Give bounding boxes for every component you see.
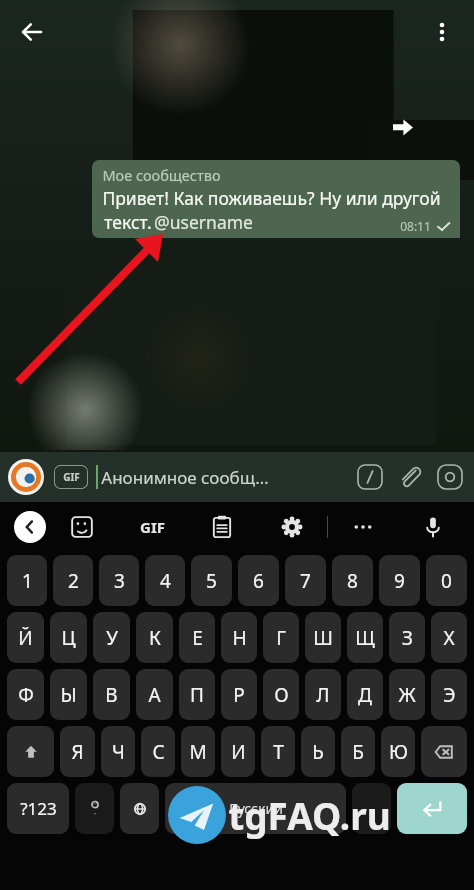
staticText: 6 [253, 568, 264, 594]
staticText: Ф [18, 682, 34, 708]
button[interactable]: 1 [7, 555, 47, 606]
staticText: К [149, 625, 161, 651]
staticText: 08:11 [400, 218, 431, 234]
button[interactable]: Back [8, 8, 56, 56]
button[interactable]: Ф [7, 669, 44, 720]
button[interactable]: 6 [238, 555, 279, 606]
staticText: О [274, 682, 289, 708]
button[interactable]: П [179, 669, 215, 720]
button[interactable]: Expand [14, 511, 46, 543]
button[interactable]: 2 [53, 555, 93, 606]
staticText: Г [276, 625, 286, 651]
staticText: Д [358, 682, 372, 708]
button[interactable]: Enter [397, 783, 467, 834]
button[interactable]: Commands [350, 457, 390, 497]
staticText: И [231, 739, 246, 765]
staticText: Ю [389, 739, 408, 765]
button[interactable]: Ж [389, 669, 425, 720]
button[interactable]: З [389, 612, 425, 663]
button[interactable]: Э [431, 669, 467, 720]
staticText: 4 [160, 568, 171, 594]
button[interactable]: GIF keyboard [117, 502, 187, 552]
staticText: Мое сообщество [102, 165, 221, 185]
button[interactable]: М [181, 726, 215, 777]
staticText: GIF [63, 470, 80, 484]
button[interactable]: More [328, 502, 398, 552]
button[interactable]: К [136, 612, 173, 663]
button[interactable]: 3 [99, 555, 139, 606]
button[interactable]: Ы [50, 669, 87, 720]
button[interactable]: Stickers [46, 502, 117, 552]
staticText: Х [443, 625, 455, 651]
button[interactable]: 9 [379, 555, 420, 606]
staticText: Ц [61, 625, 76, 651]
button[interactable]: Settings [257, 502, 327, 552]
button[interactable]: GIF [54, 465, 88, 489]
button[interactable]: ?123 [7, 783, 69, 834]
staticText: Л [316, 682, 330, 708]
button[interactable]: Ю [381, 726, 415, 777]
staticText: 8 [347, 568, 358, 594]
button[interactable]: 8 [332, 555, 373, 606]
button[interactable]: Voice input [398, 502, 468, 552]
button[interactable]: Ц [50, 612, 87, 663]
staticText: Й [18, 625, 33, 651]
button[interactable]: 5 [191, 555, 232, 606]
button[interactable]: Т [261, 726, 295, 777]
button[interactable]: Ш [305, 612, 341, 663]
staticText: П [190, 682, 204, 708]
staticText: У [106, 625, 118, 651]
button[interactable]: Ь [301, 726, 335, 777]
button[interactable]: С [141, 726, 175, 777]
button[interactable]: Русский [165, 783, 346, 834]
staticText: В [105, 682, 118, 708]
staticText: Русский [229, 799, 283, 818]
button[interactable]: А [136, 669, 173, 720]
button[interactable]: Р [221, 669, 257, 720]
button[interactable]: Й [7, 612, 44, 663]
button[interactable]: Change language [120, 783, 159, 834]
staticText: С [152, 739, 165, 765]
button[interactable]: Camera [430, 457, 470, 497]
button[interactable]: И [221, 726, 255, 777]
button[interactable]: Period [352, 783, 391, 834]
button[interactable]: Backspace [421, 726, 467, 777]
button[interactable]: Г [263, 612, 299, 663]
staticText: Ь [312, 739, 324, 765]
staticText: Ш [313, 625, 333, 651]
button[interactable]: Я [60, 726, 95, 777]
button[interactable]: Мое сообщество [92, 160, 460, 238]
staticText: Ж [398, 682, 416, 708]
button[interactable]: Shift [7, 726, 54, 777]
button[interactable]: Л [305, 669, 341, 720]
button[interactable]: В [93, 669, 130, 720]
button[interactable]: Д [347, 669, 383, 720]
button[interactable]: О [263, 669, 299, 720]
staticText: Щ [355, 625, 375, 651]
button[interactable]: Forward [388, 112, 418, 142]
staticText: Т [273, 739, 284, 765]
button[interactable]: Щ [347, 612, 383, 663]
staticText: 7 [300, 568, 311, 594]
button[interactable]: Ч [101, 726, 135, 777]
button[interactable]: Н [221, 612, 257, 663]
button[interactable]: У [93, 612, 130, 663]
staticText: 3 [114, 568, 125, 594]
button[interactable]: Х [431, 612, 467, 663]
staticText: А [148, 682, 161, 708]
button[interactable]: Profile [8, 459, 44, 495]
staticText: Н [232, 625, 247, 651]
staticText: текст. [102, 210, 154, 234]
staticText: Б [352, 739, 364, 765]
staticText: Ы [60, 682, 77, 708]
staticText: tgFAQ.ru [228, 790, 391, 840]
button[interactable]: Б [341, 726, 375, 777]
button[interactable]: 4 [145, 555, 185, 606]
button[interactable]: More options [418, 8, 466, 56]
button[interactable]: Attach [390, 457, 430, 497]
button[interactable]: Emoji [75, 783, 114, 834]
button[interactable]: Clipboard [187, 502, 257, 552]
button[interactable]: 0 [426, 555, 467, 606]
button[interactable]: 7 [285, 555, 326, 606]
button[interactable]: Е [179, 612, 215, 663]
